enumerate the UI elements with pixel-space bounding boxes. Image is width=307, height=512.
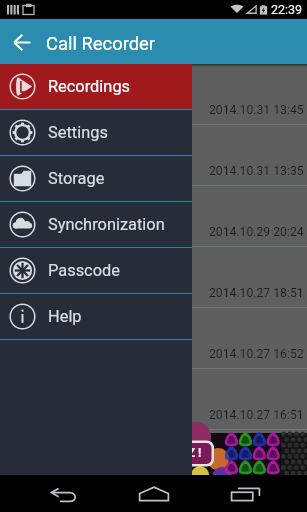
staticText: Synchronization — [48, 215, 165, 234]
button[interactable]: Help — [0, 294, 192, 339]
staticText: 2014.10.27 16:52 — [209, 347, 304, 361]
staticText: 22:39 — [271, 2, 303, 17]
button[interactable]: Synchronization — [0, 202, 192, 247]
button[interactable]: 2014.10.31 13:45 — [0, 64, 307, 125]
button[interactable]: Recent apps — [221, 475, 269, 512]
button[interactable]: Advertisement — [0, 433, 307, 475]
button[interactable]: Settings — [0, 110, 192, 155]
staticText: 2014.10.27 16:51 — [209, 408, 304, 422]
button[interactable]: 2014.10.27 18:51 — [0, 247, 307, 308]
staticText: Recordings — [48, 77, 131, 96]
button[interactable]: Back — [0, 19, 46, 64]
staticText: Storage — [48, 169, 105, 188]
staticText: 2014.10.27 18:51 — [209, 286, 304, 300]
button[interactable]: Passcode — [0, 248, 192, 293]
staticText: 2014.10.31 13:45 — [209, 103, 304, 117]
staticText: RAZ ! — [172, 446, 202, 460]
button[interactable]: 2014.10.31 13:35 — [0, 125, 307, 186]
staticText: Call Recorder — [46, 33, 156, 55]
staticText: 2014.10.29 20:24 — [209, 225, 304, 239]
button[interactable]: Storage — [0, 156, 192, 201]
button[interactable]: 2014.10.29 20:24 — [0, 186, 307, 247]
staticText: Settings — [48, 123, 108, 142]
staticText: Passcode — [48, 261, 120, 280]
button[interactable]: Back — [40, 475, 88, 512]
button[interactable]: Home — [130, 475, 178, 512]
staticText: Help — [48, 307, 82, 326]
staticText: 2014.10.31 13:35 — [209, 164, 304, 178]
button[interactable]: 2014.10.27 16:51 — [0, 369, 307, 430]
button[interactable]: Recordings — [0, 64, 192, 109]
button[interactable]: 2014.10.27 16:52 — [0, 308, 307, 369]
